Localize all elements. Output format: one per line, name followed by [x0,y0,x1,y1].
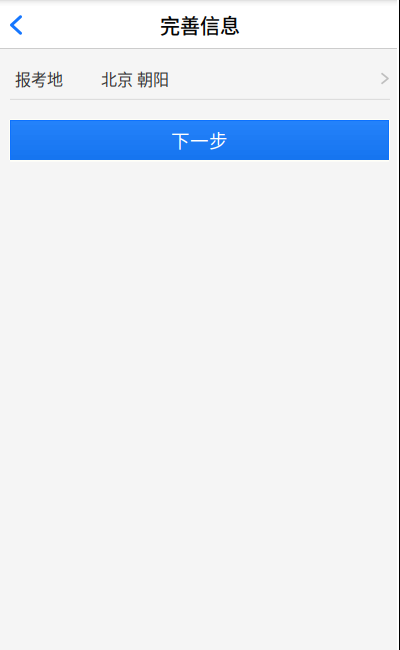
button[interactable]: 报考地 [0,49,400,100]
staticText: 北京 朝阳 [101,67,169,90]
button[interactable]: 下一步 [10,120,389,160]
staticText: 下一步 [171,127,228,153]
staticText: 完善信息 [160,10,240,39]
staticText: 报考地 [15,67,63,90]
button[interactable]: Back [0,0,36,49]
